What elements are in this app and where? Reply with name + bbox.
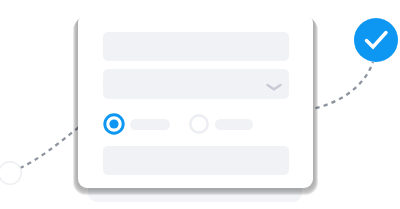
button[interactable]: Option two	[0, 0, 400, 209]
button[interactable]: Start point	[0, 0, 400, 209]
button[interactable]: Option one, selected	[0, 0, 400, 209]
button[interactable]: Completed	[0, 0, 400, 209]
button[interactable]: Dropdown	[0, 0, 400, 209]
button[interactable]: Message field	[0, 0, 400, 209]
button[interactable]: Text field	[0, 0, 400, 209]
